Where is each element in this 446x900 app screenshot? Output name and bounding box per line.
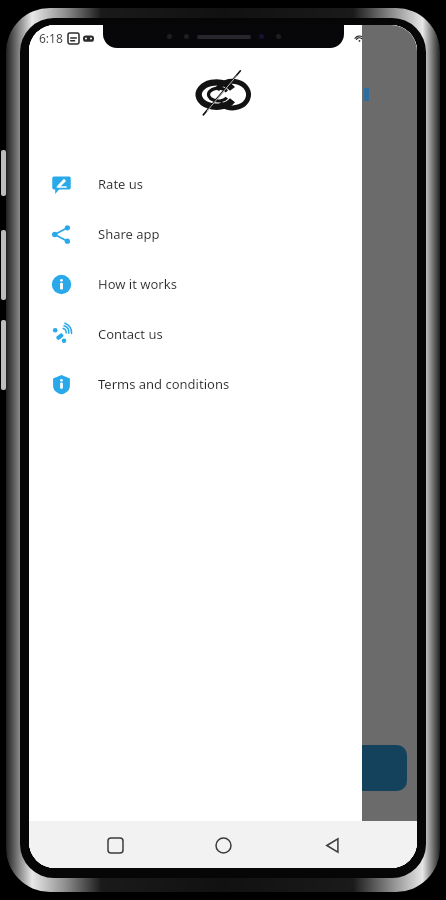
button[interactable]: Recent apps bbox=[92, 822, 138, 868]
button[interactable]: Back bbox=[309, 822, 355, 868]
staticText: How it works bbox=[98, 275, 177, 293]
button[interactable]: Terms and conditions bbox=[29, 359, 417, 409]
staticText: Rate us bbox=[98, 175, 144, 193]
button[interactable]: Rate us bbox=[29, 159, 417, 209]
staticText: Contact us bbox=[98, 325, 163, 343]
staticText: 6:18 bbox=[39, 30, 63, 46]
button[interactable]: How it works bbox=[29, 259, 417, 309]
staticText: Terms and conditions bbox=[98, 375, 230, 393]
button[interactable]: Home bbox=[200, 822, 246, 868]
staticText: Share app bbox=[98, 225, 160, 243]
button[interactable]: Share app bbox=[29, 209, 417, 259]
button[interactable]: Contact us bbox=[29, 309, 417, 359]
